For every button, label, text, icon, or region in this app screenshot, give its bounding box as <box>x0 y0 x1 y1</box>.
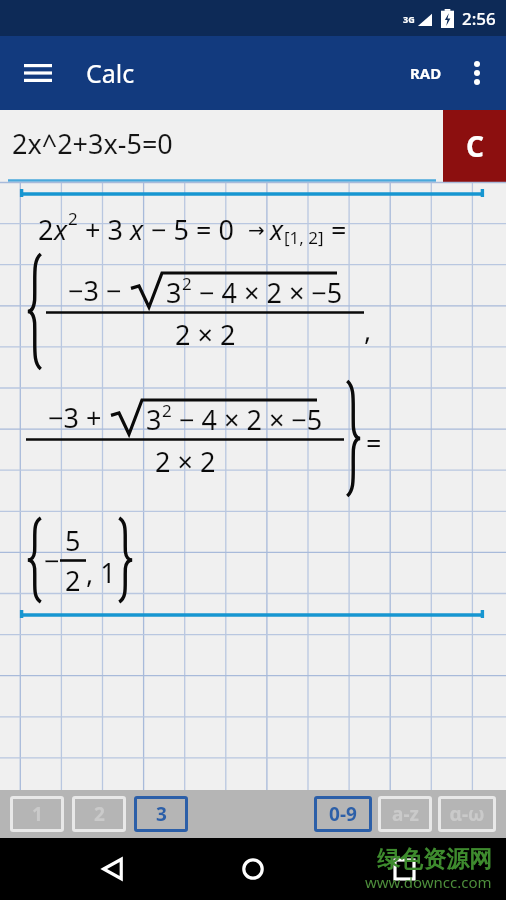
staticText: , 1 <box>86 554 116 591</box>
staticText: 绿色资源网 <box>377 845 492 874</box>
staticText: 2:56 <box>462 7 496 30</box>
staticText: [1, 2] <box>284 226 324 249</box>
button[interactable]: 0-9 <box>314 796 372 832</box>
staticText: → <box>248 216 270 243</box>
staticText: 1 <box>32 801 43 827</box>
staticText: 2 × 2 <box>175 316 236 353</box>
staticText: − <box>44 542 60 579</box>
staticText: x <box>270 211 284 248</box>
staticText: 2 × 2 <box>155 443 216 480</box>
staticText: , <box>364 311 372 348</box>
button[interactable]: 3 <box>134 796 188 832</box>
staticText: 2 <box>68 207 78 230</box>
staticText: RAD <box>410 63 442 83</box>
staticText: x <box>54 211 68 248</box>
staticText: 3 <box>166 274 182 311</box>
staticText: 3 <box>156 801 167 827</box>
staticText: − 4 × 2 × −5 <box>172 401 323 438</box>
staticText: 2 <box>162 399 172 422</box>
staticText: 5 <box>65 522 81 559</box>
button[interactable]: Recent apps <box>380 845 428 893</box>
button[interactable]: a-z <box>378 796 432 832</box>
staticText: = <box>366 424 382 461</box>
staticText: 2 <box>38 211 54 248</box>
button[interactable]: 2 <box>72 796 126 832</box>
button[interactable]: Home <box>229 845 277 893</box>
staticText: www.downcc.com <box>365 872 492 892</box>
staticText: −3 − <box>68 272 129 309</box>
staticText: C <box>466 127 484 165</box>
staticText: 2x^2+3x-5=0 <box>12 125 173 162</box>
staticText: α-ω <box>449 801 485 827</box>
button[interactable]: α-ω <box>438 796 496 832</box>
button[interactable]: Open navigation menu <box>12 47 64 99</box>
staticText: Calc <box>86 56 135 90</box>
staticText: a-z <box>392 801 419 827</box>
button[interactable]: RAD <box>402 55 450 91</box>
button[interactable]: 1 <box>10 796 64 832</box>
button[interactable]: More options <box>454 50 500 96</box>
staticText: − 5 = 0 <box>144 211 248 248</box>
staticText: 2 <box>182 272 192 295</box>
staticText: 2 <box>65 562 81 599</box>
staticText: + 3 <box>78 211 123 248</box>
staticText: = <box>324 211 347 248</box>
staticText: −3 + <box>48 399 109 436</box>
staticText: 2 <box>94 801 105 827</box>
button[interactable]: C <box>443 110 506 182</box>
button[interactable]: Back <box>88 845 136 893</box>
staticText: 3 <box>146 401 162 438</box>
staticText: 0-9 <box>329 801 357 827</box>
staticText: x <box>123 211 144 248</box>
staticText: − 4 × 2 × −5 <box>192 274 343 311</box>
staticText: 3G <box>403 13 415 25</box>
